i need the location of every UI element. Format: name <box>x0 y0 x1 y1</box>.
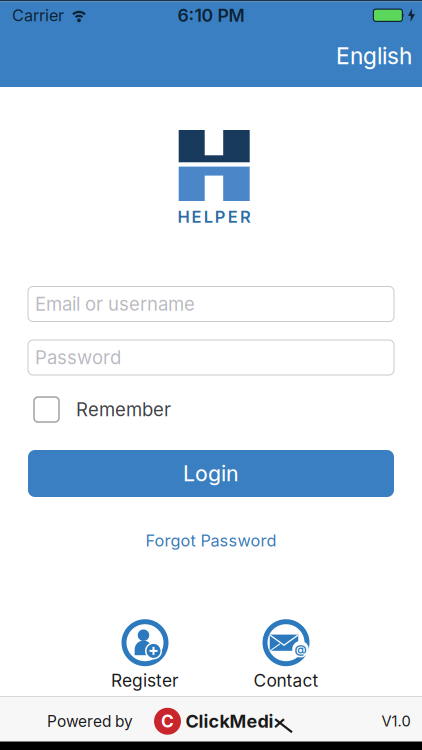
staticText: C <box>161 711 174 731</box>
button[interactable]: Password <box>0 340 422 375</box>
staticText: ClickMedi <box>185 711 273 732</box>
staticText: Remember <box>76 399 171 420</box>
button[interactable]: Forgot Password <box>145 531 276 550</box>
staticText: English <box>336 43 412 69</box>
staticText: Powered by <box>47 712 133 730</box>
button[interactable]: Change language <box>0 33 422 87</box>
staticText: Password <box>35 347 121 368</box>
staticText: Login <box>183 461 239 486</box>
button[interactable]: Remember <box>0 397 422 422</box>
button[interactable]: @ <box>241 619 331 691</box>
staticText: Register <box>111 670 179 691</box>
button[interactable]: Email or username <box>0 286 422 321</box>
staticText: @ <box>294 642 306 656</box>
staticText: Contact <box>253 670 318 691</box>
staticText: V1.0 <box>381 713 410 730</box>
staticText: Carrier <box>12 6 64 25</box>
staticText: HELPER <box>177 207 251 226</box>
button[interactable]: Login <box>0 450 422 497</box>
button[interactable]: Register <box>100 619 190 691</box>
staticText: Forgot Password <box>145 531 276 550</box>
staticText: 6:10 PM <box>177 5 244 26</box>
button[interactable]: ClickMedix <box>154 708 292 735</box>
staticText: Email or username <box>35 293 195 315</box>
